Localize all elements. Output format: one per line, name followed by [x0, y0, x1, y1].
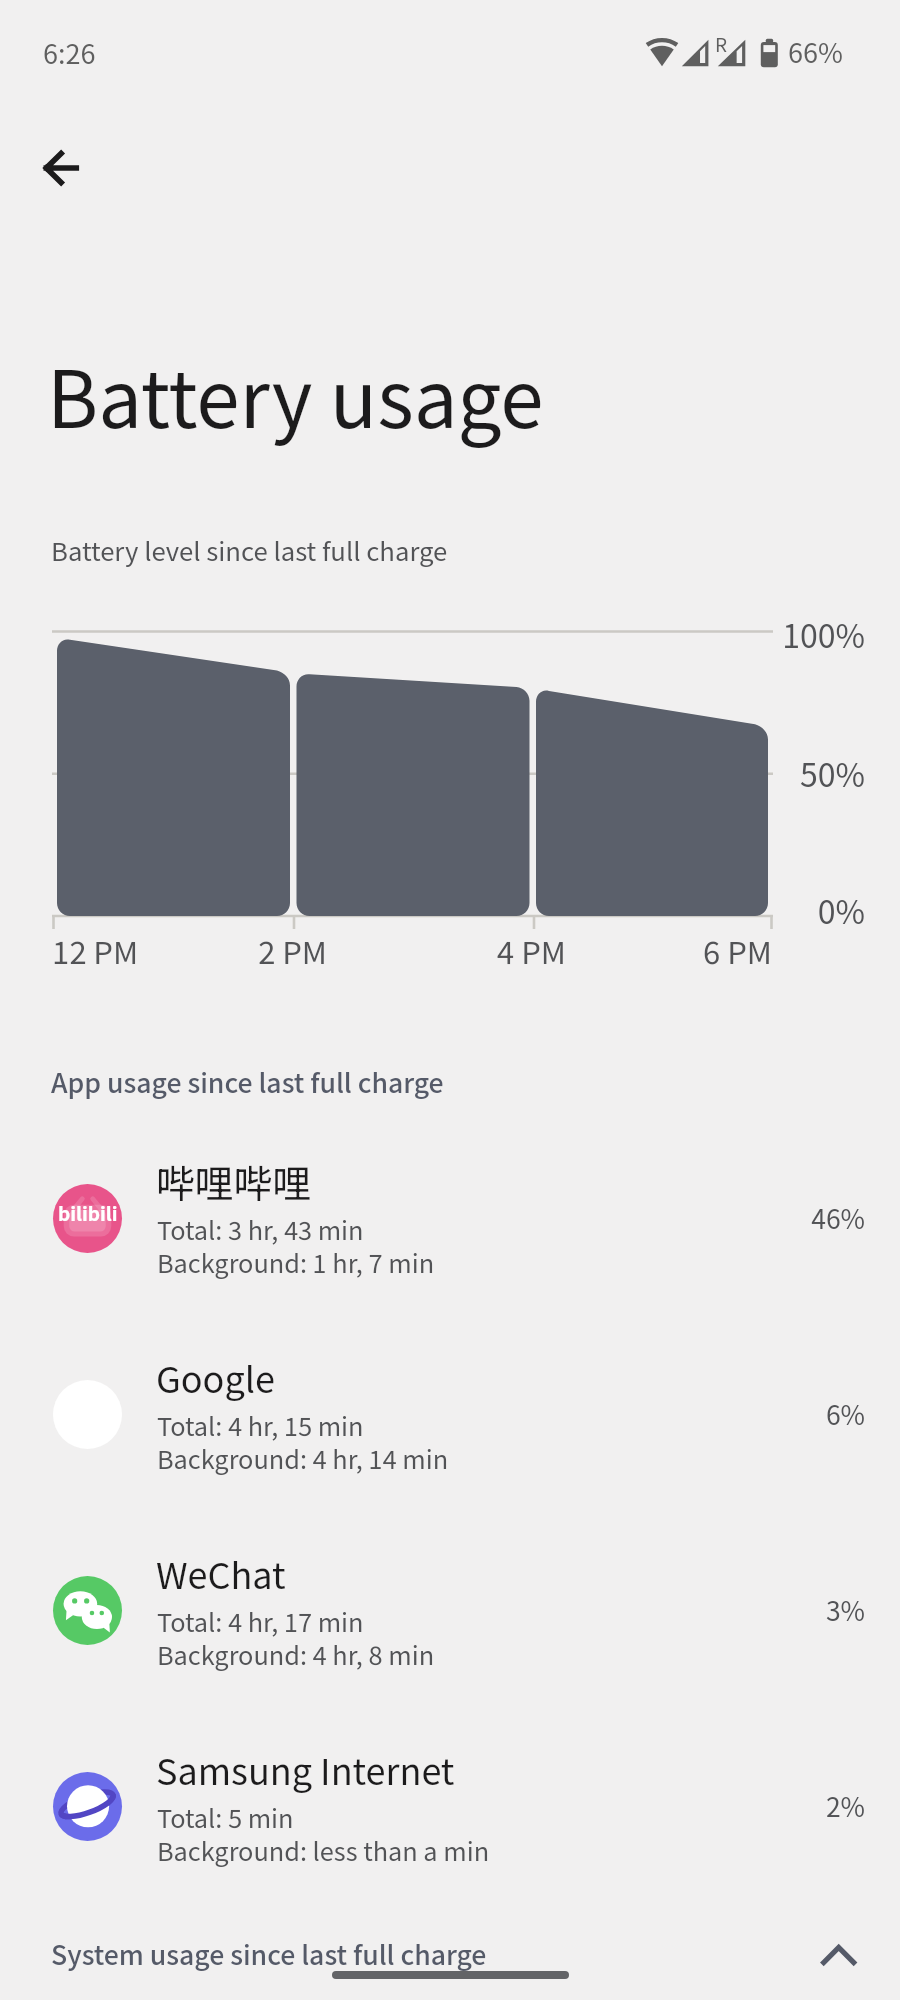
- staticText: Background: 4 hr, 8 min: [157, 1636, 435, 1673]
- staticText: R: [715, 30, 728, 58]
- button[interactable]: Google: [0, 1353, 900, 1503]
- staticText: bilibili: [58, 1199, 118, 1227]
- staticText: Battery level since last full charge: [51, 531, 448, 568]
- staticText: 2%: [0, 1786, 865, 1824]
- staticText: Background: 1 hr, 7 min: [157, 1244, 435, 1281]
- staticText: App usage since last full charge: [51, 1062, 444, 1101]
- staticText: 3%: [0, 1590, 865, 1628]
- staticText: Total: 4 hr, 17 min: [157, 1603, 364, 1640]
- staticText: WeChat: [156, 1547, 286, 1599]
- staticText: 66%: [788, 32, 843, 71]
- button[interactable]: Samsung Internet: [0, 1745, 900, 1895]
- staticText: 6%: [0, 1394, 865, 1432]
- button[interactable]: Navigate up: [20, 126, 104, 210]
- staticText: 12 PM: [52, 928, 139, 973]
- staticText: 2 PM: [258, 928, 327, 973]
- staticText: 0%: [0, 887, 865, 933]
- staticText: Total: 5 min: [157, 1799, 294, 1836]
- staticText: 哔哩哔哩: [156, 1153, 312, 1209]
- button[interactable]: bilibili: [0, 1157, 900, 1307]
- staticText: Samsung Internet: [156, 1743, 455, 1795]
- staticText: 46%: [0, 1198, 865, 1236]
- staticText: 50%: [0, 750, 865, 796]
- staticText: Google: [156, 1351, 275, 1403]
- staticText: 100%: [0, 611, 865, 657]
- staticText: Background: less than a min: [157, 1832, 490, 1869]
- staticText: Total: 4 hr, 15 min: [157, 1407, 364, 1444]
- staticText: Total: 3 hr, 43 min: [157, 1211, 364, 1248]
- staticText: System usage since last full charge: [51, 1934, 487, 1973]
- button[interactable]: System usage since last full charge: [0, 1897, 900, 2000]
- staticText: 6 PM: [703, 928, 772, 973]
- button[interactable]: WeChat: [0, 1549, 900, 1699]
- staticText: Battery usage: [47, 338, 544, 451]
- staticText: 6:26: [43, 33, 96, 72]
- staticText: Background: 4 hr, 14 min: [157, 1440, 449, 1477]
- staticText: 4 PM: [497, 928, 566, 973]
